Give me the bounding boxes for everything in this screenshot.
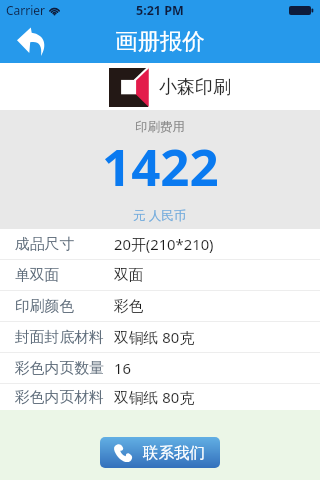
staticText: 成品尺寸: [15, 235, 75, 254]
button[interactable]: 成品尺寸: [0, 229, 320, 259]
button[interactable]: 封面封底材料: [0, 322, 320, 352]
staticText: 彩色内页数量: [15, 359, 104, 378]
staticText: 单双面: [15, 266, 60, 285]
staticText: 双铜纸 80克: [114, 387, 194, 407]
staticText: 双面: [114, 266, 144, 285]
staticText: 彩色: [114, 297, 144, 316]
button[interactable]: 联系我们: [100, 437, 220, 468]
staticText: 联系我们: [143, 443, 205, 463]
button[interactable]: 彩色内页材料: [0, 384, 320, 410]
button[interactable]: 彩色内页数量: [0, 353, 320, 383]
button[interactable]: 印刷颜色: [0, 291, 320, 321]
staticText: 彩色内页材料: [15, 388, 104, 407]
button[interactable]: Back: [0, 20, 56, 63]
staticText: 20开(210*210): [114, 234, 214, 254]
staticText: Carrier: [6, 2, 46, 18]
staticText: 画册报价: [115, 27, 205, 55]
staticText: 封面封底材料: [15, 328, 104, 347]
staticText: 1422: [102, 131, 219, 200]
staticText: 16: [114, 358, 131, 378]
staticText: 印刷费用: [135, 119, 185, 135]
staticText: 5:21 PM: [136, 2, 184, 19]
staticText: 印刷颜色: [15, 297, 75, 316]
staticText: 小森印刷: [159, 76, 231, 99]
button[interactable]: 单双面: [0, 260, 320, 290]
staticText: 双铜纸 80克: [114, 327, 194, 347]
staticText: 元 人民币: [133, 207, 187, 224]
